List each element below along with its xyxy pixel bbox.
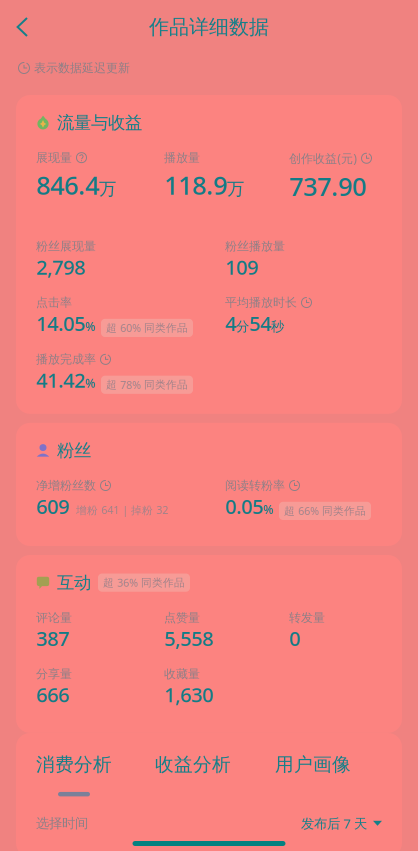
staticText: 粉丝展现量	[36, 239, 96, 254]
staticText: 作品详细数据	[149, 15, 269, 39]
staticText: 发布后 7 天	[301, 814, 367, 832]
staticText: %	[263, 501, 273, 517]
staticText: 创作收益(元)	[289, 150, 357, 166]
staticText: 同类作品	[144, 378, 188, 391]
staticText: 点击率	[36, 295, 72, 310]
staticText: 387	[36, 625, 69, 652]
staticText: 选择时间	[36, 815, 88, 831]
staticText: 用户画像	[275, 753, 351, 776]
staticText: 粉丝	[57, 440, 91, 461]
staticText: 超	[103, 576, 114, 589]
staticText: 超	[106, 378, 117, 391]
staticText: 收益分析	[155, 753, 231, 776]
staticText: 评论量	[36, 610, 72, 625]
staticText: 万	[227, 178, 244, 200]
staticText: 转发量	[289, 610, 325, 625]
button[interactable]: Back	[4, 5, 48, 49]
staticText: 阅读转粉率	[225, 478, 285, 493]
staticText: 36%	[117, 575, 138, 590]
button[interactable]: 消费分析	[36, 753, 112, 796]
staticText: 66%	[298, 504, 319, 518]
staticText: 同类作品	[144, 321, 188, 334]
staticText: 2,798	[36, 254, 85, 280]
staticText: 消费分析	[36, 753, 112, 776]
staticText: 万	[99, 178, 116, 200]
staticText: 粉丝播放量	[225, 239, 285, 254]
button[interactable]: 发布后 7 天	[301, 814, 382, 832]
staticText: 109	[225, 254, 258, 280]
staticText: 60%	[120, 321, 141, 335]
staticText: 点赞量	[164, 610, 200, 625]
button[interactable]: 用户画像	[275, 753, 351, 796]
staticText: 表示数据延迟更新	[34, 61, 130, 75]
staticText: 846.4	[36, 168, 99, 202]
staticText: 14.05	[36, 310, 85, 336]
staticText: 超	[106, 321, 117, 334]
staticText: 737.90	[289, 169, 366, 203]
staticText: 118.9	[164, 168, 227, 202]
staticText: 5,558	[164, 625, 213, 652]
staticText: 播放量	[164, 150, 200, 165]
staticText: 0.05	[225, 493, 263, 519]
staticText: 分享量	[36, 667, 72, 681]
staticText: 净增粉丝数	[36, 478, 96, 493]
staticText: 0	[289, 625, 300, 652]
staticText: 609	[36, 493, 69, 519]
staticText: 互动	[57, 572, 91, 593]
staticText: 展现量	[36, 150, 72, 165]
staticText: %	[85, 375, 95, 391]
staticText: 同类作品	[322, 504, 366, 517]
staticText: 1,630	[164, 681, 213, 708]
staticText: 秒	[271, 318, 284, 335]
staticText: 41.42	[36, 367, 85, 393]
staticText: 流量与收益	[57, 112, 142, 133]
staticText: 平均播放时长	[225, 295, 297, 310]
staticText: 78%	[120, 378, 141, 392]
staticText: 超	[284, 504, 295, 517]
staticText: 666	[36, 681, 69, 708]
staticText: %	[85, 318, 95, 334]
staticText: 54	[249, 310, 271, 336]
staticText: 同类作品	[141, 576, 185, 589]
staticText: 增粉 641 | 掉粉 32	[76, 503, 168, 517]
button[interactable]: 收益分析	[155, 753, 231, 796]
staticText: 4	[225, 310, 236, 336]
staticText: 播放完成率	[36, 352, 96, 367]
staticText: 收藏量	[164, 667, 200, 681]
staticText: 分	[236, 318, 249, 335]
